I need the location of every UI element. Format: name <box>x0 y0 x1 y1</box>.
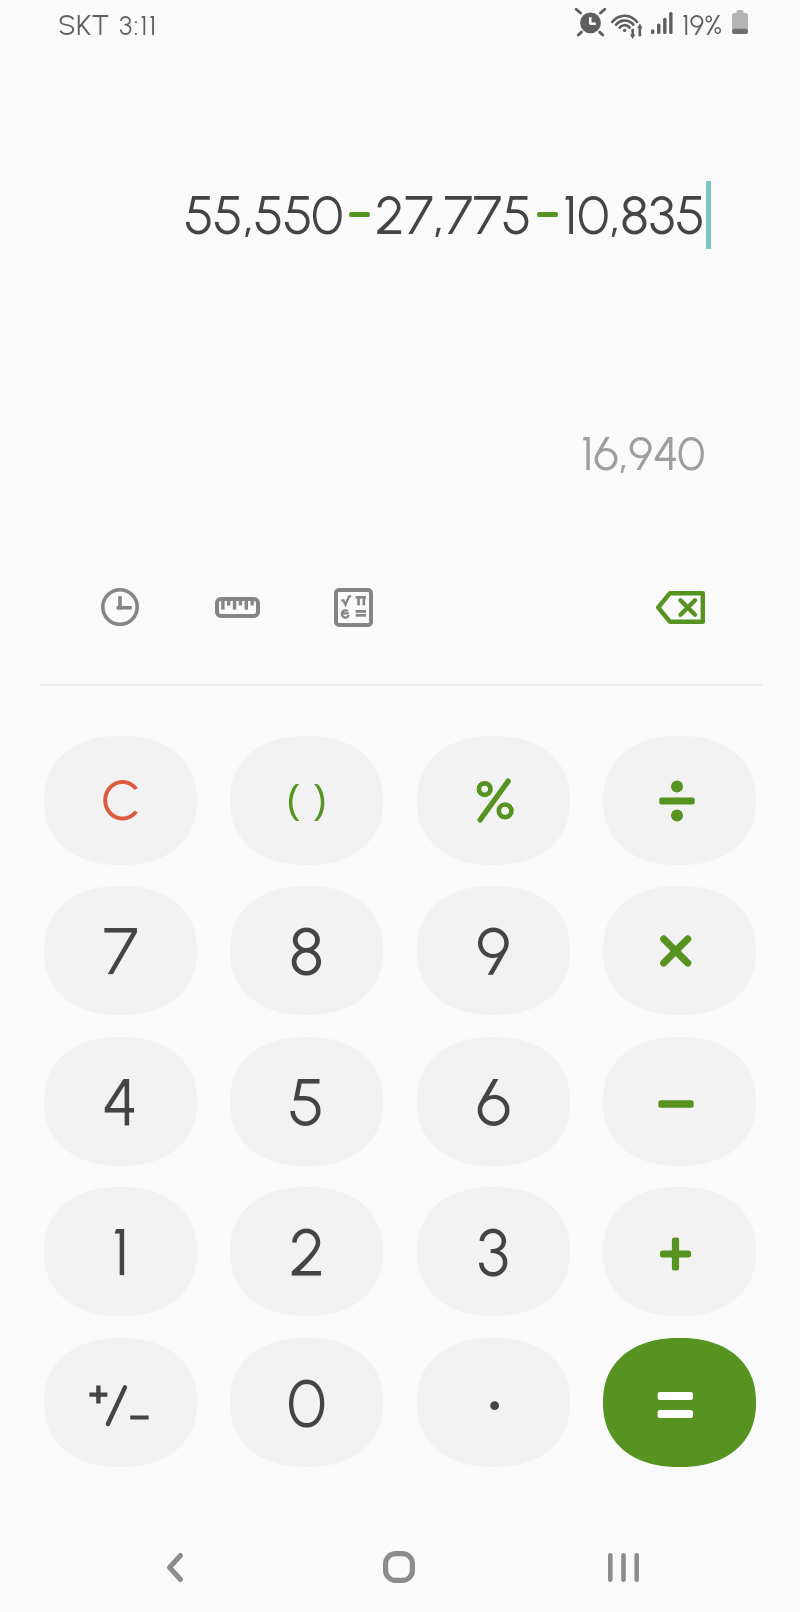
staticText: 27,775 <box>375 183 532 248</box>
button[interactable]: Backspace <box>650 577 710 637</box>
button[interactable]: Plus minus <box>44 1338 197 1467</box>
button[interactable]: Recent apps <box>583 1527 663 1607</box>
button[interactable]: Percent <box>417 736 570 865</box>
button[interactable]: Minus <box>603 1037 756 1166</box>
staticText: C <box>101 767 141 834</box>
staticText: 19% <box>682 8 723 42</box>
staticText: 16,940 <box>581 425 706 479</box>
staticText: 1 <box>112 1212 130 1291</box>
button[interactable]: History <box>90 577 150 637</box>
staticText: 3:11 <box>119 9 158 41</box>
button[interactable]: Scientific calculator <box>323 577 383 637</box>
button[interactable]: Unit converter <box>207 577 267 637</box>
staticText: SKT <box>58 7 110 42</box>
button[interactable]: Multiply <box>603 886 756 1015</box>
button[interactable]: 2 <box>230 1187 383 1316</box>
staticText: 0 <box>287 1363 327 1442</box>
staticText: 2 <box>289 1212 325 1291</box>
button[interactable]: 5 <box>230 1037 383 1166</box>
staticText: 10,835 <box>563 183 706 248</box>
button[interactable]: Equals <box>603 1338 756 1467</box>
button[interactable]: 6 <box>417 1037 570 1166</box>
button[interactable]: Clear <box>44 736 197 865</box>
button[interactable]: Home <box>359 1527 439 1607</box>
staticText: 3 <box>477 1212 510 1291</box>
button[interactable]: 0 <box>230 1338 383 1467</box>
button[interactable]: Decimal point <box>417 1338 570 1467</box>
button[interactable]: 4 <box>44 1037 197 1166</box>
staticText: ( ) <box>286 771 328 830</box>
button[interactable]: Plus <box>603 1187 756 1316</box>
staticText: 8 <box>289 911 324 990</box>
button[interactable]: Divide <box>603 736 756 865</box>
staticText: 6 <box>476 1062 512 1141</box>
button[interactable]: 3 <box>417 1187 570 1316</box>
button[interactable]: Back <box>135 1527 215 1607</box>
button[interactable]: 7 <box>44 886 197 1015</box>
staticText: 55,550 <box>184 183 344 248</box>
button[interactable]: Parentheses <box>230 736 383 865</box>
staticText: 9 <box>476 911 511 990</box>
staticText: 5 <box>288 1062 325 1141</box>
button[interactable]: 8 <box>230 886 383 1015</box>
button[interactable]: 1 <box>44 1187 197 1316</box>
button[interactable]: 9 <box>417 886 570 1015</box>
staticText: 7 <box>103 911 139 990</box>
staticText: 4 <box>102 1062 139 1141</box>
